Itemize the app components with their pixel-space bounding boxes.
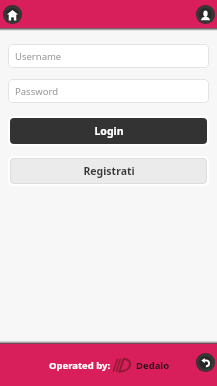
button[interactable]: Home (3, 5, 22, 24)
button[interactable]: Login (8, 116, 209, 146)
button[interactable]: Registrati (8, 156, 209, 186)
staticText: Login (94, 124, 124, 138)
staticText: Registrati (83, 164, 135, 178)
button[interactable]: Back (196, 353, 215, 372)
staticText: Username (15, 50, 62, 63)
button[interactable]: Account (196, 5, 215, 24)
staticText: Operated by: (49, 359, 111, 372)
staticText: Password (15, 85, 58, 98)
staticText: Dedalo (136, 359, 170, 372)
button[interactable]: Password (8, 79, 209, 103)
button[interactable]: Username (8, 44, 209, 68)
